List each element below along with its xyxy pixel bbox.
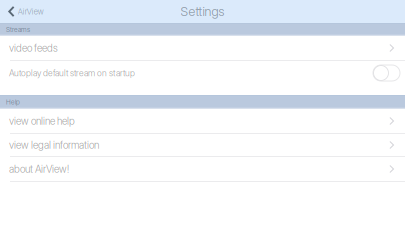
staticText: view online help bbox=[9, 115, 75, 127]
staticText: Autoplay default stream on startup bbox=[9, 68, 135, 78]
staticText: about AirView! bbox=[9, 163, 69, 175]
button[interactable]: view legal information bbox=[0, 134, 405, 156]
button[interactable]: about AirView! bbox=[0, 157, 405, 181]
staticText: Streams bbox=[6, 25, 30, 34]
button[interactable]: video feeds bbox=[0, 36, 405, 60]
staticText: view legal information bbox=[9, 139, 99, 151]
staticText: AirView bbox=[18, 7, 44, 16]
staticText: Settings bbox=[180, 4, 224, 19]
button[interactable]: Autoplay default stream on startup bbox=[373, 65, 400, 81]
staticText: video feeds bbox=[9, 42, 58, 54]
staticText: Help bbox=[6, 98, 20, 106]
button[interactable]: AirView bbox=[0, 0, 52, 23]
button[interactable]: view online help bbox=[0, 109, 405, 133]
